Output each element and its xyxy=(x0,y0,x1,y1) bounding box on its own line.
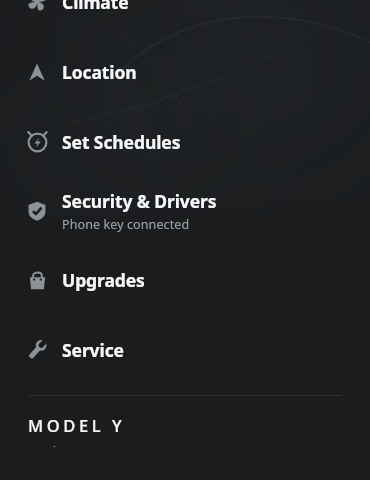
staticText: Climate xyxy=(62,0,129,14)
button[interactable]: Upgrades xyxy=(0,245,370,315)
staticText: Phone key connected xyxy=(62,216,190,233)
button[interactable]: Location xyxy=(0,37,370,107)
staticText: Security & Drivers xyxy=(62,189,217,213)
staticText: Dual Motor xyxy=(28,442,98,447)
staticText: Upgrades xyxy=(62,268,145,292)
staticText: Location xyxy=(62,60,137,84)
button[interactable]: Set Schedules xyxy=(0,107,370,176)
button[interactable]: Service xyxy=(0,315,370,385)
staticText: Set Schedules xyxy=(62,130,181,154)
button[interactable]: Climate xyxy=(0,0,370,37)
staticText: Service xyxy=(62,338,124,362)
staticText: MODEL Y xyxy=(28,414,126,436)
button[interactable]: Security & Drivers xyxy=(0,176,370,245)
